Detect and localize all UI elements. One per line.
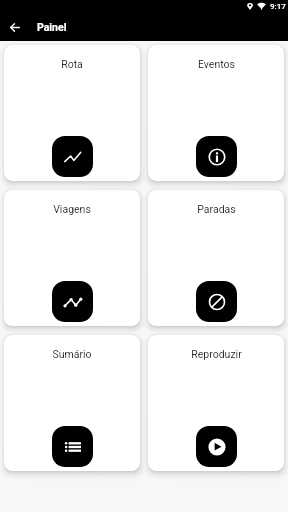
staticText: 9:17 xyxy=(270,2,286,11)
staticText: Eventos xyxy=(198,58,235,70)
staticText: Sumário xyxy=(52,348,92,360)
button[interactable]: Viagens xyxy=(4,190,140,326)
staticText: Reproduzir xyxy=(191,348,242,360)
button[interactable]: Sumário xyxy=(4,335,140,471)
staticText: Paradas xyxy=(197,203,236,215)
staticText: Painel xyxy=(37,21,67,33)
button[interactable]: Paradas xyxy=(148,190,284,326)
button[interactable]: Reproduzir xyxy=(148,335,284,471)
staticText: Rota xyxy=(61,58,83,70)
button[interactable]: Rota xyxy=(4,45,140,181)
staticText: Viagens xyxy=(53,203,91,215)
button[interactable]: Back xyxy=(0,16,29,38)
button[interactable]: Eventos xyxy=(148,45,284,181)
